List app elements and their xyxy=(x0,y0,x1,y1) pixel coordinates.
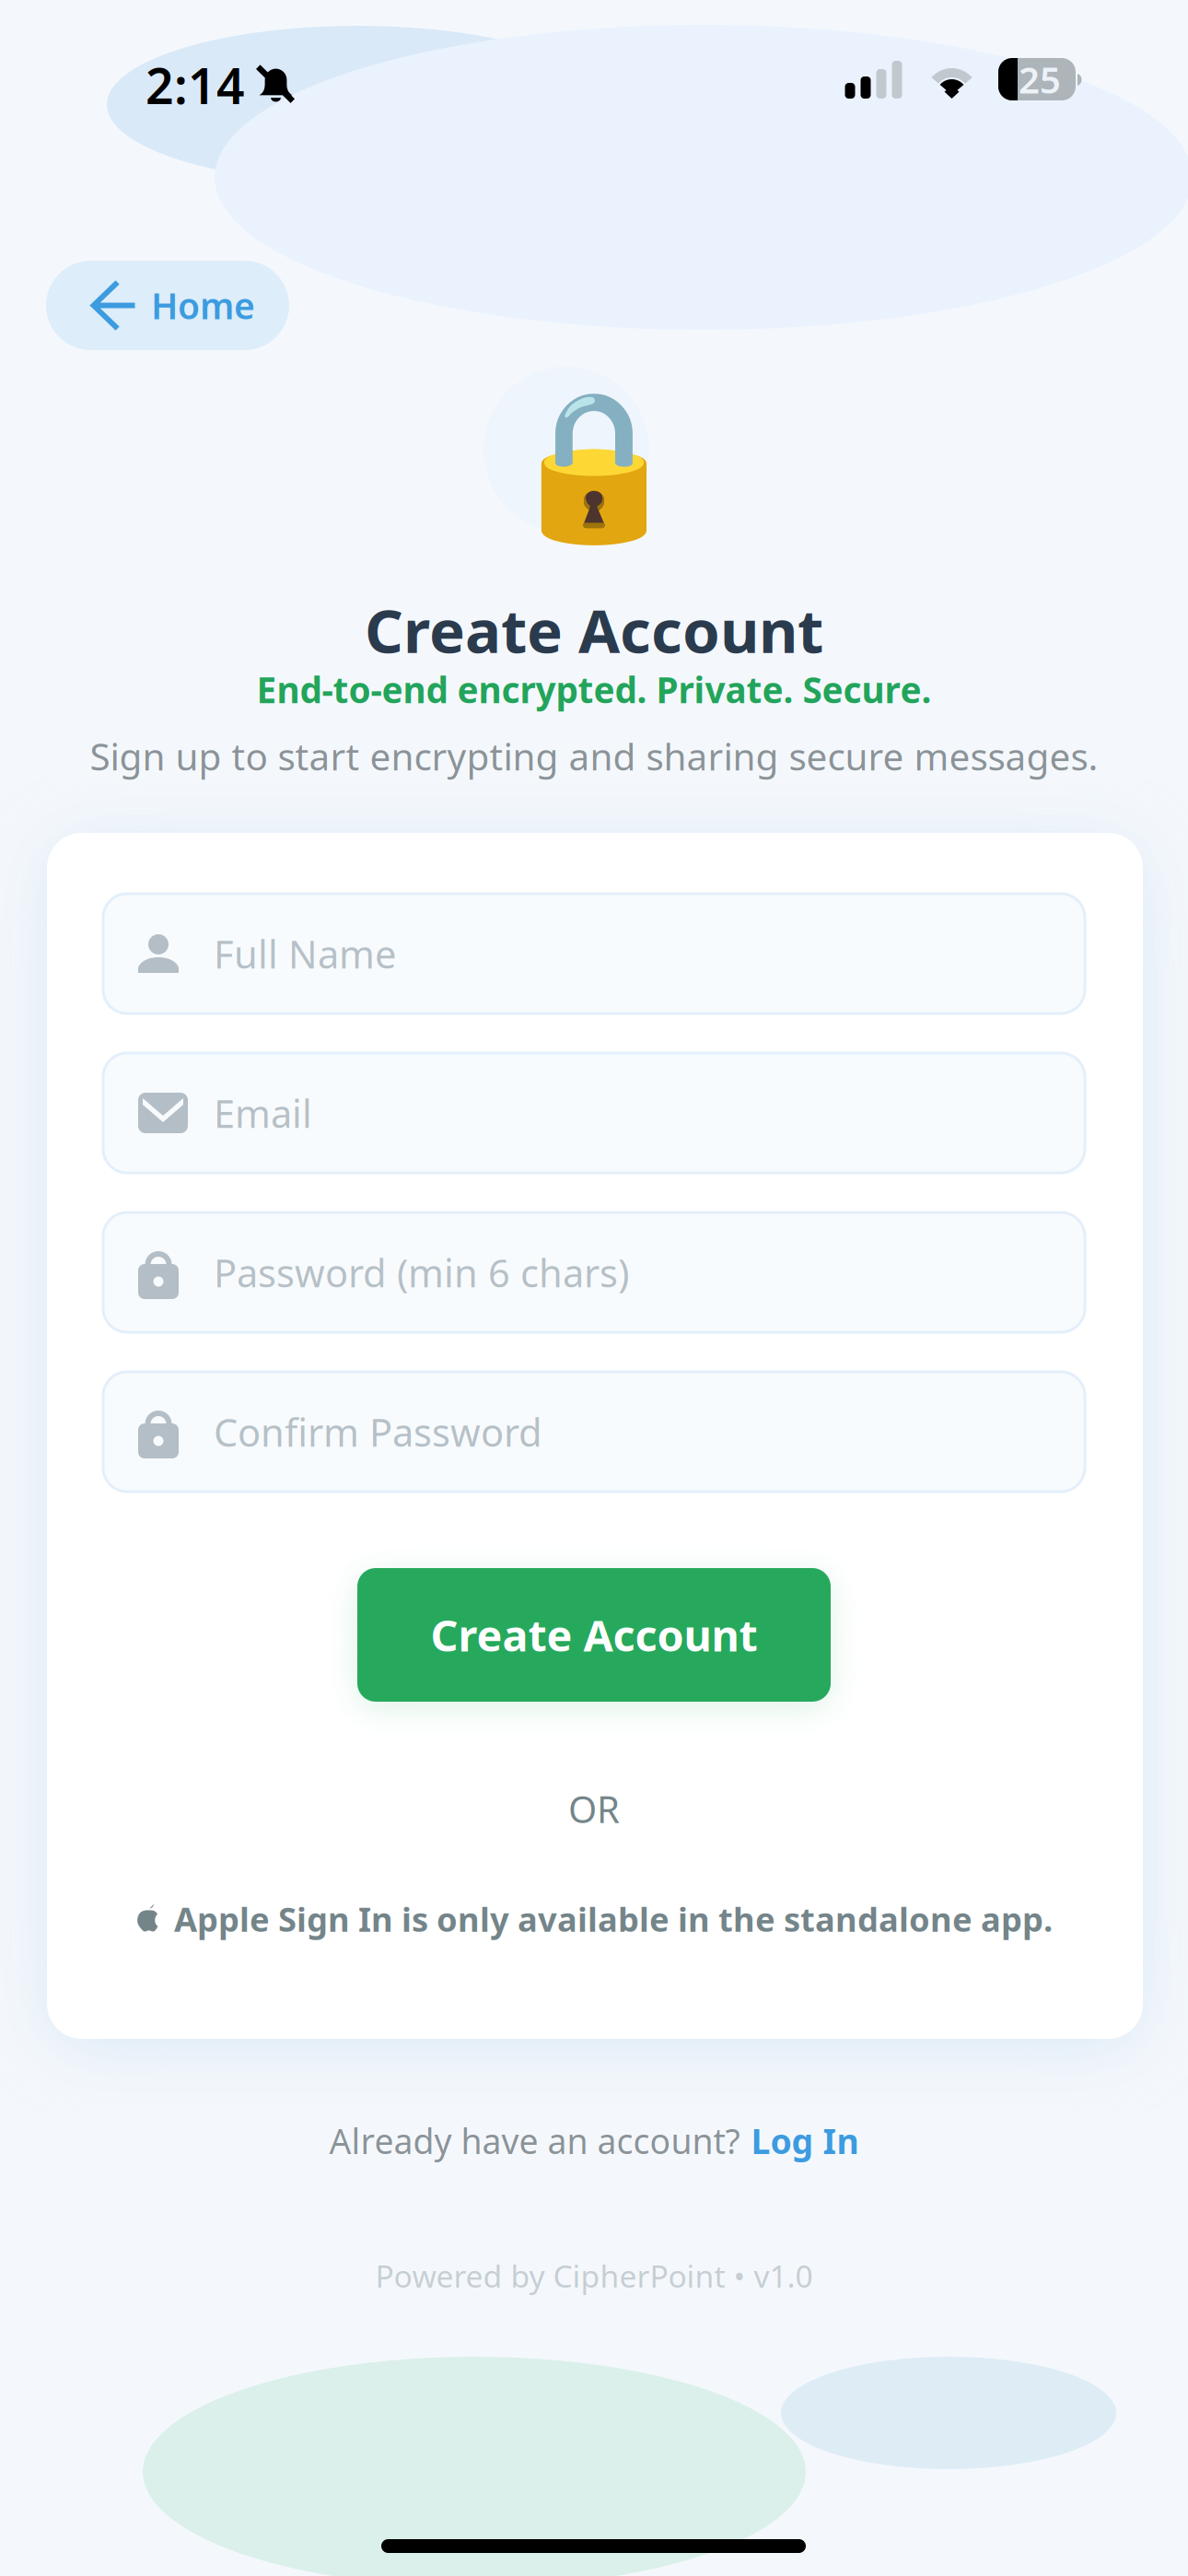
staticText: 25 xyxy=(1019,54,1061,104)
staticText: Create Account xyxy=(365,589,823,671)
staticText: Apple Sign In is only available in the s… xyxy=(174,1896,1053,1942)
button[interactable]: Create Account xyxy=(357,1568,831,1702)
staticText: 🔒 xyxy=(504,382,684,548)
staticText: Log In xyxy=(751,2117,859,2164)
staticText: 2:14 xyxy=(146,52,245,118)
button[interactable]: Home xyxy=(46,261,289,350)
staticText: Home xyxy=(151,281,255,330)
staticText: Confirm Password xyxy=(214,1406,542,1458)
staticText: Email xyxy=(214,1087,312,1139)
staticText: OR xyxy=(568,1784,620,1834)
staticText: Create Account xyxy=(431,1606,757,1664)
staticText: End-to-end encrypted. Private. Secure. xyxy=(256,665,932,714)
staticText: Password (min 6 chars) xyxy=(214,1246,629,1299)
staticText: Sign up to start encrypting and sharing … xyxy=(90,731,1098,781)
staticText: Already have an account? xyxy=(329,2117,740,2164)
staticText: Powered by CipherPoint • v1.0 xyxy=(375,2254,813,2297)
staticText: Full Name xyxy=(214,927,396,980)
button[interactable]: Already have an account? xyxy=(329,2117,859,2164)
